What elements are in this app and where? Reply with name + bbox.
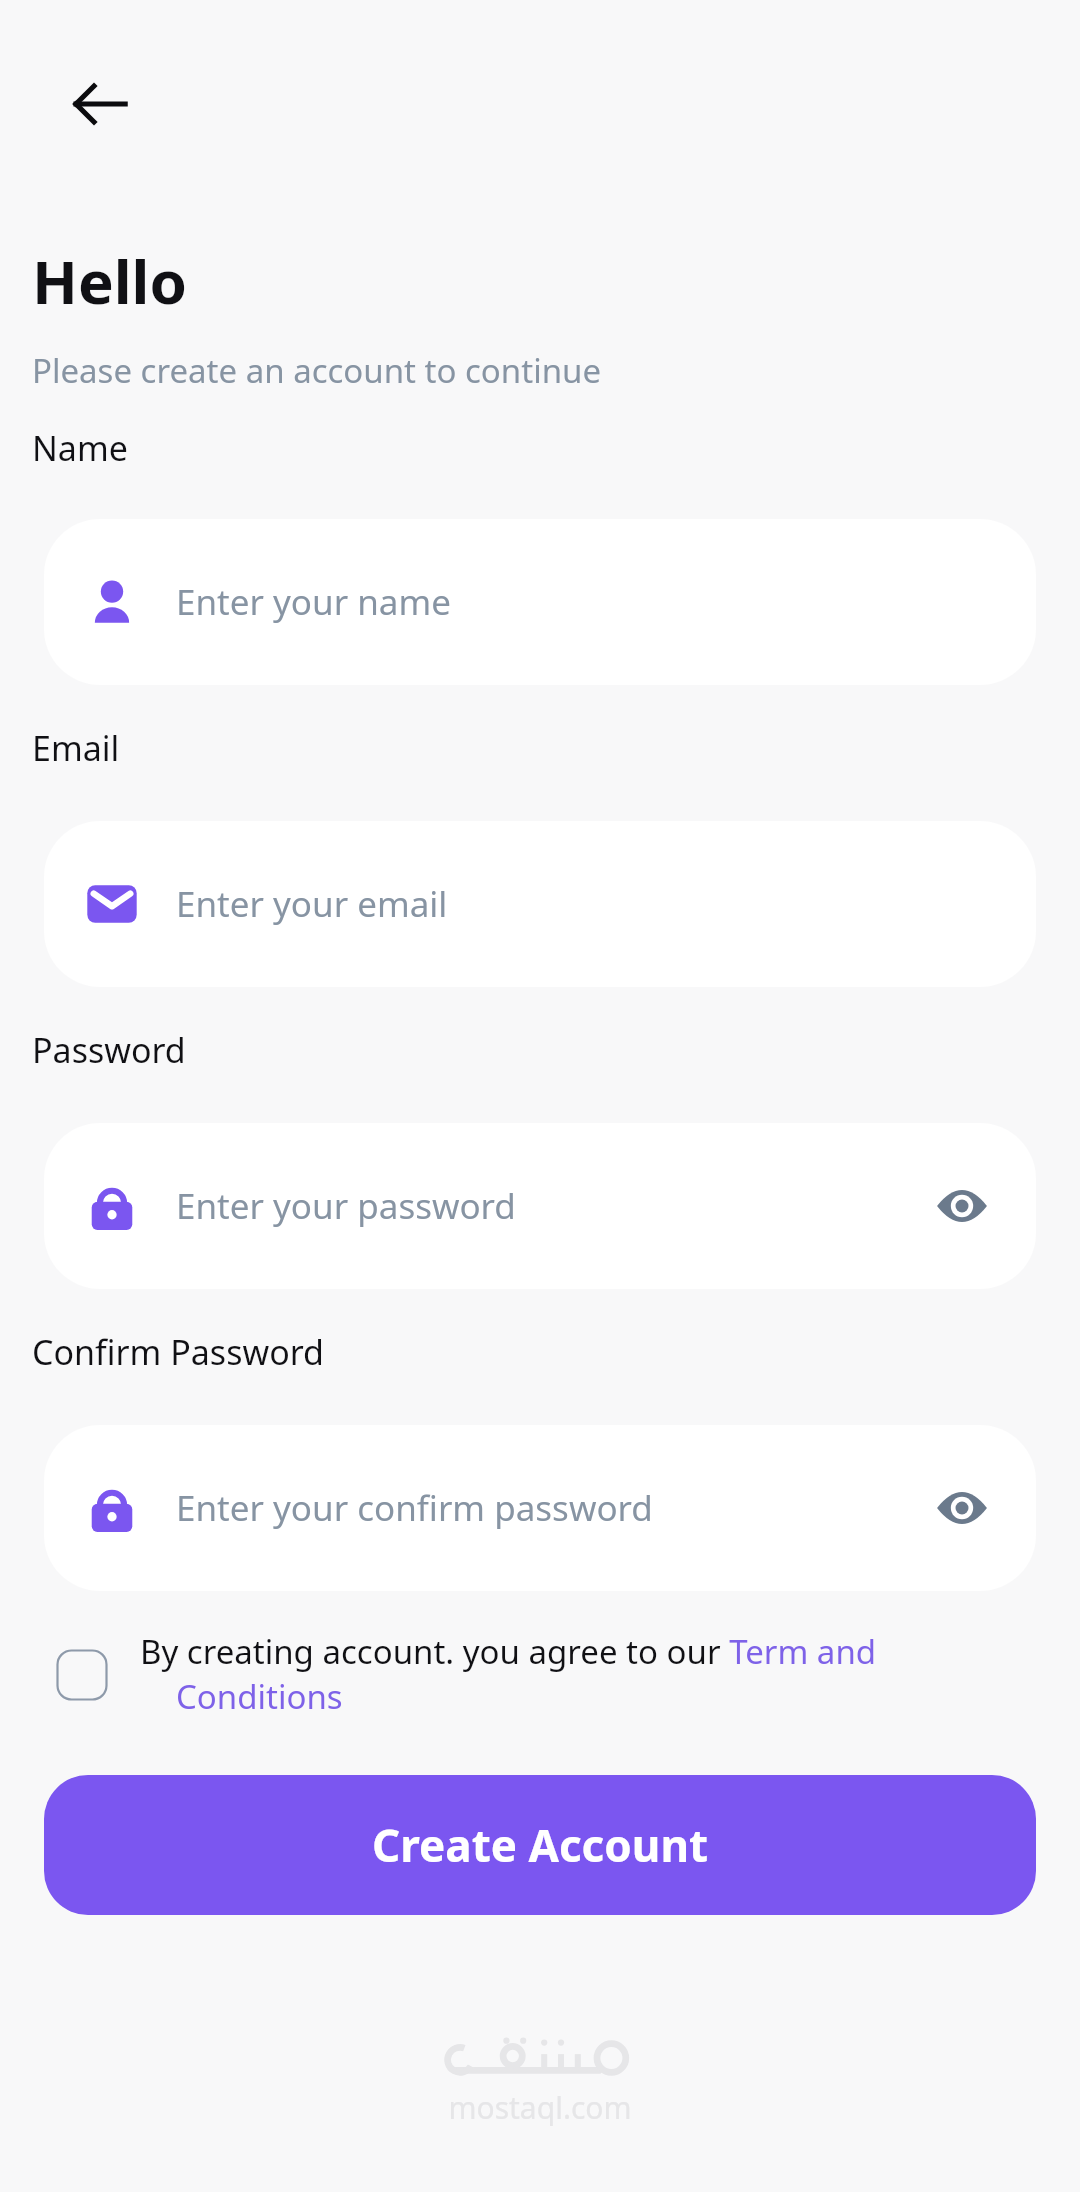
staticText: Hello bbox=[32, 240, 187, 322]
staticText: Enter your email bbox=[176, 880, 996, 928]
button[interactable]: Enter your confirm password bbox=[44, 1425, 1036, 1591]
button[interactable]: Create Account bbox=[44, 1775, 1036, 1915]
staticText: Enter your password bbox=[176, 1182, 928, 1230]
button[interactable]: Show password bbox=[928, 1474, 996, 1542]
staticText: Enter your confirm password bbox=[176, 1484, 928, 1532]
staticText: Email bbox=[32, 725, 120, 771]
staticText: Create Account bbox=[372, 1815, 709, 1875]
staticText: Password bbox=[32, 1027, 186, 1073]
staticText: By creating account. you agree to our Te… bbox=[140, 1629, 877, 1674]
staticText: Name bbox=[32, 425, 128, 471]
staticText: Please create an account to continue bbox=[32, 348, 602, 393]
button[interactable]: Agree to terms bbox=[56, 1649, 108, 1701]
button[interactable]: Back bbox=[38, 42, 162, 166]
staticText: Enter your name bbox=[176, 578, 996, 626]
staticText: Confirm Password bbox=[32, 1329, 324, 1375]
staticText: mostaql.com bbox=[448, 2087, 632, 2128]
button[interactable]: Show password bbox=[928, 1172, 996, 1240]
button[interactable]: Enter your name bbox=[44, 519, 1036, 685]
button[interactable]: Enter your password bbox=[44, 1123, 1036, 1289]
button[interactable]: Enter your email bbox=[44, 821, 1036, 987]
staticText: Conditions bbox=[176, 1674, 343, 1719]
